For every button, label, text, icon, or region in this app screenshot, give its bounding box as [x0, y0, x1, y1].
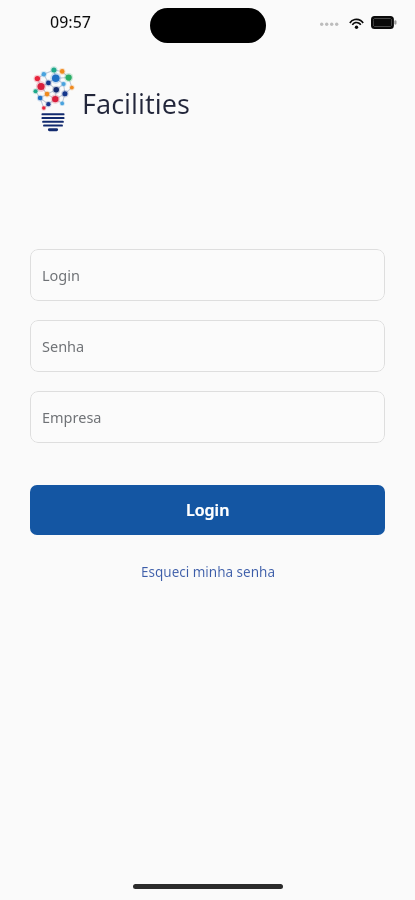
staticText: Esqueci minha senha	[141, 563, 275, 581]
other: Facilities logo	[30, 66, 76, 138]
button[interactable]: Senha	[30, 320, 385, 372]
staticText: Login	[42, 265, 80, 285]
button[interactable]: Empresa	[30, 391, 385, 443]
staticText: Empresa	[42, 407, 102, 427]
button[interactable]: Login	[30, 485, 385, 535]
button[interactable]: Esqueci minha senha	[131, 559, 285, 585]
staticText: Senha	[42, 336, 85, 356]
staticText: Login	[186, 499, 230, 521]
staticText: Facilities	[82, 85, 190, 122]
button[interactable]: Login	[30, 249, 385, 301]
staticText: 09:57	[50, 11, 91, 33]
